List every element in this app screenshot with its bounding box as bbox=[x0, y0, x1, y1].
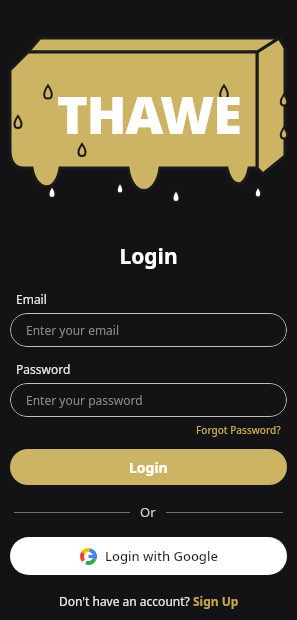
staticText: Email bbox=[16, 291, 47, 307]
staticText: Enter your email bbox=[26, 322, 120, 338]
button[interactable]: Login with Google bbox=[10, 537, 287, 575]
staticText: Enter your password bbox=[26, 392, 143, 408]
staticText: Or bbox=[140, 503, 156, 521]
button[interactable]: Forgot Password? bbox=[194, 421, 283, 439]
staticText: Password bbox=[16, 361, 71, 377]
staticText: Login bbox=[129, 458, 168, 477]
button[interactable]: Login bbox=[10, 449, 287, 485]
staticText: Don't have an account? bbox=[59, 593, 193, 609]
staticText: Login with Google bbox=[105, 547, 218, 565]
staticText: THAWE bbox=[57, 78, 241, 149]
button[interactable]: Enter your email bbox=[10, 313, 287, 347]
staticText: Login bbox=[0, 242, 297, 271]
button[interactable]: Sign Up bbox=[193, 593, 239, 609]
button[interactable]: Enter your password bbox=[10, 383, 287, 417]
